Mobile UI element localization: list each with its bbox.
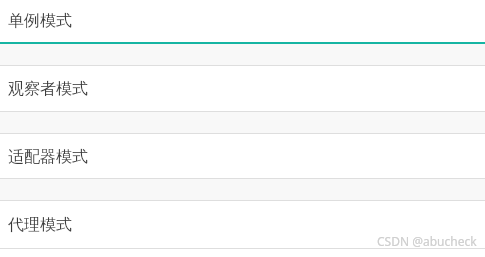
- button[interactable]: 适配器模式: [0, 134, 485, 178]
- staticText: 单例模式: [8, 11, 72, 31]
- staticText: CSDN @abucheck: [377, 233, 477, 249]
- staticText: 适配器模式: [8, 147, 88, 167]
- button[interactable]: 观察者模式: [0, 66, 485, 111]
- button[interactable]: 代理模式: [0, 201, 485, 248]
- staticText: 代理模式: [8, 215, 72, 235]
- button[interactable]: 单例模式: [0, 0, 485, 42]
- staticText: 观察者模式: [8, 79, 88, 99]
